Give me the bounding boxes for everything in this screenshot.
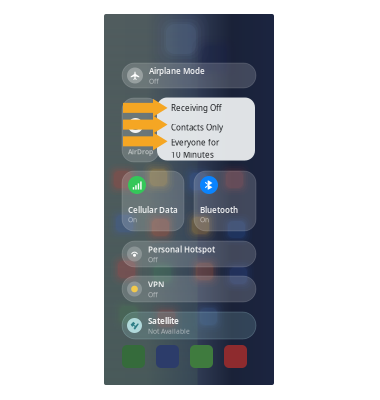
button[interactable]: Cellular Data xyxy=(122,171,184,231)
staticText: Airplane Mode xyxy=(149,65,205,76)
staticText: Off xyxy=(148,290,158,299)
staticText: On xyxy=(200,215,209,224)
staticText: Personal Hotspot xyxy=(148,244,215,255)
button[interactable]: Everyone for xyxy=(157,136,255,160)
staticText: VPN xyxy=(148,279,164,290)
staticText: Bluetooth xyxy=(200,204,238,215)
button[interactable]: VPN xyxy=(122,276,256,302)
button[interactable]: Personal Hotspot xyxy=(122,241,256,267)
staticText: 10 Minutes xyxy=(171,149,214,160)
button[interactable]: Satellite xyxy=(122,312,256,339)
staticText: Not Available xyxy=(148,327,190,335)
staticText: Satellite xyxy=(148,315,179,326)
staticText: AirDrop xyxy=(128,147,153,156)
staticText: Off xyxy=(148,255,158,264)
staticText: Cellular Data xyxy=(128,204,178,215)
staticText: Off xyxy=(149,77,159,85)
button[interactable]: Receiving Off xyxy=(157,97,255,118)
button[interactable]: Bluetooth xyxy=(194,171,256,231)
staticText: Contacts Only xyxy=(171,122,223,133)
staticText: On xyxy=(128,215,137,224)
staticText: Everyone for xyxy=(171,137,219,148)
button[interactable]: Contacts Only xyxy=(157,118,255,136)
button[interactable]: AirDrop xyxy=(122,98,159,162)
staticText: Receiving Off xyxy=(171,103,222,113)
button[interactable]: Airplane Mode xyxy=(122,63,256,88)
